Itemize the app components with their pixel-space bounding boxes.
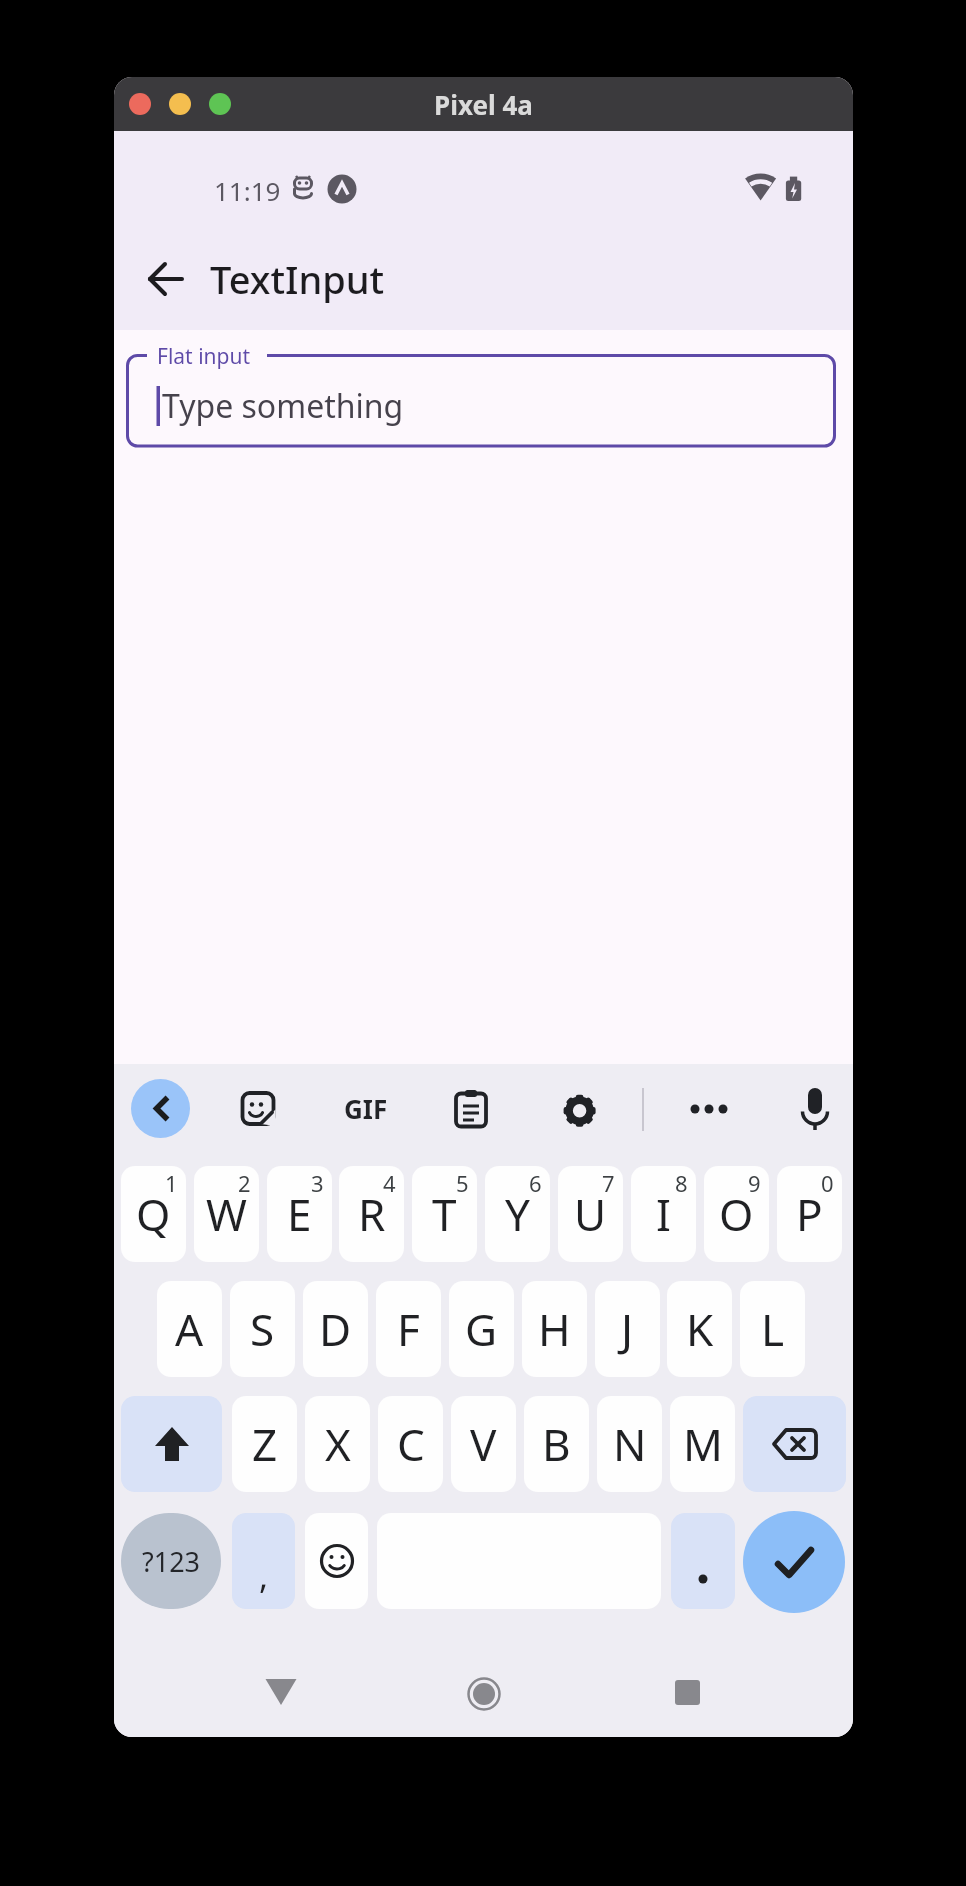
staticText: , (259, 1553, 269, 1599)
staticText: L (761, 1299, 785, 1359)
staticText: 2 (238, 1168, 251, 1198)
button[interactable]: T (412, 1166, 477, 1262)
staticText: Flat input (157, 342, 251, 371)
staticText: GIF (344, 1091, 388, 1126)
button[interactable]: Z (232, 1396, 297, 1492)
staticText: Type something (162, 384, 404, 428)
button[interactable]: U (558, 1166, 623, 1262)
button[interactable]: V (451, 1396, 516, 1492)
staticText: X (325, 1414, 351, 1474)
button[interactable] (743, 1511, 845, 1613)
staticText: U (574, 1184, 607, 1244)
staticText: G (465, 1299, 498, 1359)
staticText: T (432, 1184, 457, 1244)
button[interactable] (743, 1396, 846, 1492)
staticText: H (538, 1299, 571, 1359)
button[interactable]: P (777, 1166, 842, 1262)
staticText: B (542, 1414, 571, 1474)
staticText: ?123 (142, 1543, 201, 1580)
staticText: P (796, 1184, 823, 1244)
staticText: 9 (748, 1168, 761, 1198)
button[interactable]: C (378, 1396, 443, 1492)
staticText: W (206, 1184, 247, 1244)
staticText: 4 (383, 1168, 396, 1198)
button[interactable] (121, 1396, 222, 1492)
button[interactable]: G (449, 1281, 514, 1377)
button[interactable]: S (230, 1281, 295, 1377)
button[interactable]: N (597, 1396, 662, 1492)
staticText: C (397, 1414, 425, 1474)
staticText: Y (505, 1184, 530, 1244)
button[interactable]: X (305, 1396, 370, 1492)
staticText: E (287, 1184, 312, 1244)
staticText: Pixel 4a (434, 87, 533, 122)
staticText: 8 (675, 1168, 688, 1198)
staticText: 0 (821, 1168, 834, 1198)
staticText: 11:19 (214, 173, 281, 205)
button[interactable]: ?123 (121, 1513, 221, 1609)
button[interactable]: E (267, 1166, 332, 1262)
button[interactable]: B (524, 1396, 589, 1492)
button[interactable]: , (232, 1513, 295, 1609)
staticText: Z (252, 1414, 278, 1474)
button[interactable] (305, 1513, 368, 1609)
staticText: 1 (165, 1168, 178, 1198)
button[interactable]: K (667, 1281, 732, 1377)
staticText: S (250, 1299, 275, 1359)
staticText: N (613, 1414, 647, 1474)
button[interactable]: D (303, 1281, 368, 1377)
staticText: 3 (311, 1168, 324, 1198)
button[interactable]: R (339, 1166, 404, 1262)
staticText: R (358, 1184, 386, 1244)
staticText: M (683, 1414, 723, 1474)
staticText: J (621, 1299, 634, 1359)
staticText: I (656, 1184, 671, 1244)
staticText: 6 (529, 1168, 542, 1198)
button[interactable]: W (194, 1166, 259, 1262)
button[interactable]: I (631, 1166, 696, 1262)
button[interactable]: F (376, 1281, 441, 1377)
staticText: 7 (602, 1168, 615, 1198)
staticText: O (719, 1184, 754, 1244)
button[interactable]: M (670, 1396, 735, 1492)
staticText: 5 (456, 1168, 469, 1198)
staticText: Q (136, 1184, 171, 1244)
button[interactable]: O (704, 1166, 769, 1262)
button[interactable] (131, 1079, 190, 1138)
staticText: K (686, 1299, 714, 1359)
staticText: TextInput (210, 253, 385, 305)
button[interactable]: Y (485, 1166, 550, 1262)
button[interactable] (671, 1513, 735, 1609)
button[interactable]: L (740, 1281, 805, 1377)
button[interactable]: A (157, 1281, 222, 1377)
button[interactable]: Q (121, 1166, 186, 1262)
staticText: D (319, 1299, 352, 1359)
staticText: F (397, 1299, 420, 1359)
staticText: A (175, 1299, 204, 1359)
button[interactable]: Type something (127, 355, 835, 446)
button[interactable]: J (595, 1281, 660, 1377)
button[interactable] (150, 259, 182, 299)
button[interactable]: H (522, 1281, 587, 1377)
staticText: V (470, 1414, 497, 1474)
